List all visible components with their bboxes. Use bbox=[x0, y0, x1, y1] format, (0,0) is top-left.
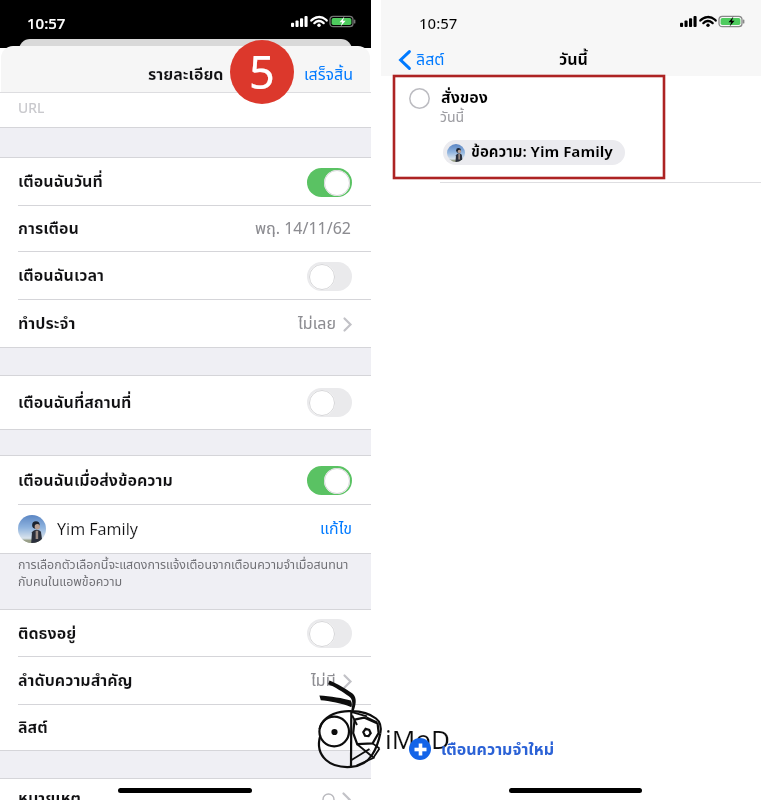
staticText: 5 bbox=[249, 41, 275, 102]
staticText: เสร็จสิ้น bbox=[304, 63, 353, 87]
button[interactable]: Yim Family bbox=[18, 505, 353, 553]
staticText: 10:57 bbox=[419, 13, 458, 33]
staticText: หมายเหตุ bbox=[18, 787, 82, 800]
button[interactable]: ติดธงอยู่ bbox=[0, 610, 371, 657]
staticText: พฤ. 14/11/62 bbox=[255, 217, 352, 241]
staticText: ไม่เลย bbox=[298, 312, 336, 336]
button[interactable]: Toggle on bbox=[307, 466, 352, 495]
button[interactable]: New reminder bbox=[409, 738, 431, 760]
staticText: Yim Family bbox=[57, 518, 138, 540]
button[interactable]: การเตือน bbox=[0, 206, 371, 252]
staticText: URL bbox=[18, 98, 45, 117]
staticText: เตือนฉันที่สถานที่ bbox=[18, 391, 132, 415]
staticText: วันนี้ bbox=[559, 48, 588, 72]
button[interactable]: เสร็จสิ้น bbox=[304, 63, 353, 87]
staticText: เตือนฉันเวลา bbox=[18, 264, 105, 288]
staticText: รายละเอียด bbox=[148, 63, 224, 87]
button[interactable]: Toggle on bbox=[307, 168, 352, 197]
button[interactable]: เตือนฉันที่สถานที่ bbox=[0, 376, 371, 429]
button[interactable]: ลิสต์ bbox=[399, 45, 445, 75]
staticText: เตือนฉันเมื่อส่งข้อความ bbox=[18, 469, 173, 493]
button[interactable]: Toggle off bbox=[307, 262, 352, 291]
staticText: เตือนความจำใหม่ bbox=[441, 738, 555, 762]
staticText: ข้อความ: Yim Family bbox=[471, 141, 613, 164]
staticText: ทำประจำ bbox=[18, 312, 76, 336]
staticText: การเลือกตัวเลือกนี้จะแสดงการแจ้งเตือนจาก… bbox=[18, 556, 349, 592]
staticText: ลิสต์ bbox=[18, 716, 48, 740]
button[interactable]: สั่งของ bbox=[381, 76, 761, 182]
button[interactable]: เตือนฉันเวลา bbox=[0, 252, 371, 300]
button[interactable]: ทำประจำ bbox=[0, 300, 371, 347]
staticText: เตือนฉันวันที่ bbox=[18, 170, 103, 194]
staticText: การเตือน bbox=[18, 217, 79, 241]
staticText: ลำดับความสำคัญ bbox=[18, 669, 133, 693]
staticText: ไม่มี bbox=[311, 669, 336, 693]
button[interactable]: Toggle off bbox=[307, 619, 352, 648]
staticText: ติดธงอยู่ bbox=[18, 622, 77, 646]
button[interactable]: ลิสต์ bbox=[0, 705, 371, 750]
button[interactable]: ข้อความ: Yim Family bbox=[447, 140, 613, 165]
staticText: ลิสต์ bbox=[416, 48, 445, 72]
button[interactable]: ลำดับความสำคัญ bbox=[0, 657, 371, 705]
button[interactable]: เตือนฉันเมื่อส่งข้อความ bbox=[0, 456, 371, 505]
button[interactable]: เตือนฉันวันที่ bbox=[0, 158, 371, 206]
staticText: สั่งของ bbox=[441, 86, 488, 110]
staticText: 10:57 bbox=[27, 13, 66, 33]
staticText: วันนี้ bbox=[440, 107, 465, 128]
staticText: iMoD bbox=[385, 721, 451, 756]
button[interactable]: Toggle off bbox=[307, 388, 352, 417]
staticText: แก้ไข bbox=[320, 517, 353, 541]
